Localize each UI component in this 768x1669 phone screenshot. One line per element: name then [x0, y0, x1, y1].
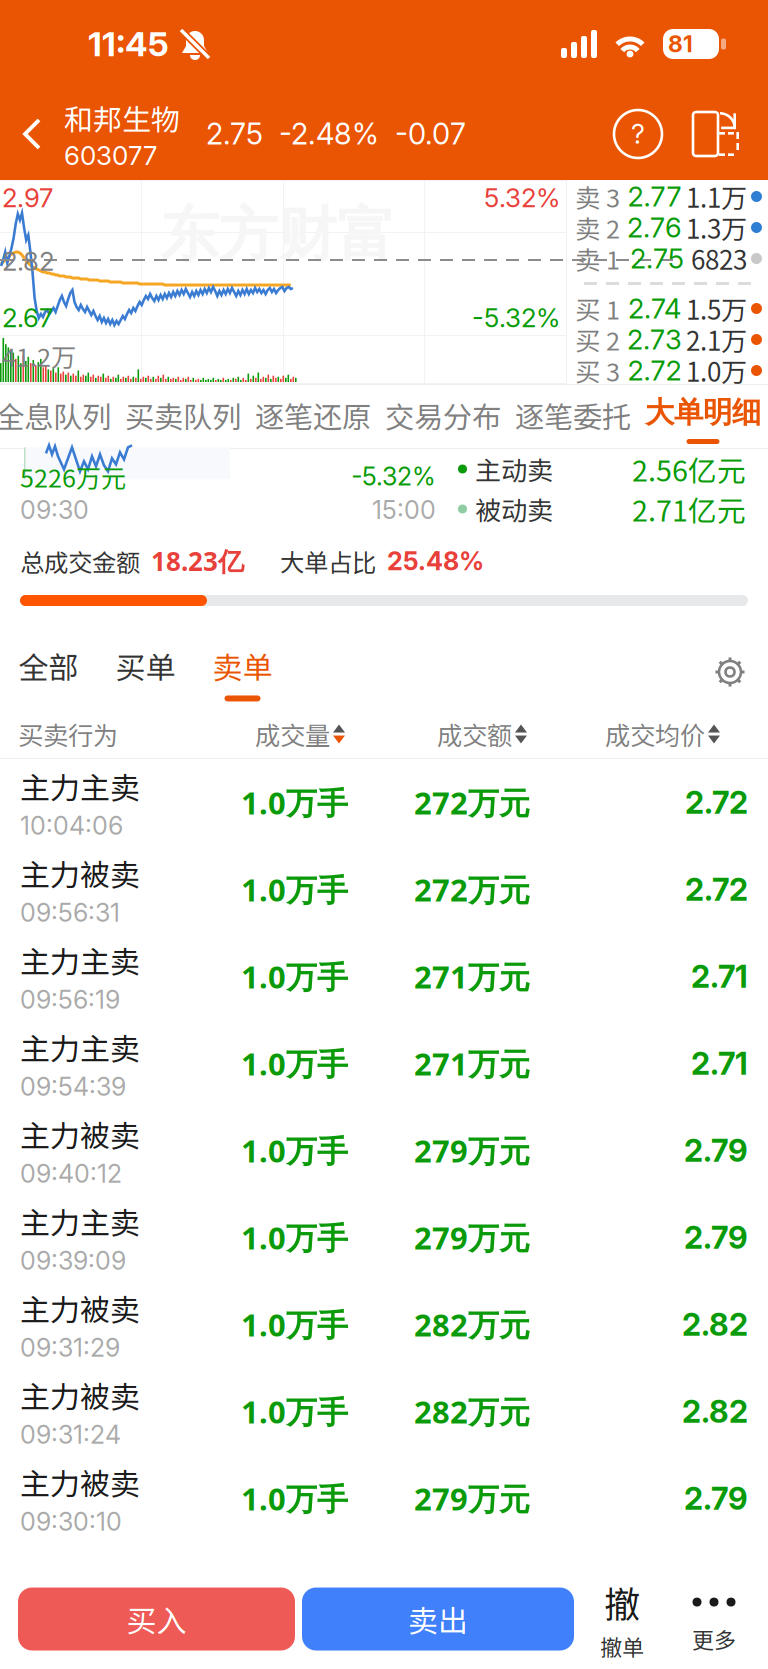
staticText: 279万元	[414, 1129, 530, 1171]
staticText: 主力被卖	[20, 1112, 140, 1155]
staticText: 2.75	[630, 242, 684, 275]
staticText: 买入	[126, 1597, 186, 1641]
staticText: 1.0万手	[241, 868, 348, 910]
staticText: 1.0万手	[241, 955, 348, 997]
staticText: 主力主卖	[20, 938, 140, 981]
staticText: 09:31:29	[20, 1333, 120, 1363]
staticText: 主力被卖	[20, 1373, 140, 1416]
staticText: 主力被卖	[20, 851, 140, 894]
staticText: 2.75 -2.48% -0.07	[206, 116, 466, 152]
staticText: 逐笔委托	[515, 394, 631, 436]
staticText: 6823	[691, 240, 747, 277]
button[interactable]: 全息队列	[0, 385, 118, 448]
staticText: 2.97	[2, 182, 53, 213]
staticText: 主力主卖	[20, 1025, 140, 1068]
button[interactable]: 买卖队列	[118, 385, 248, 448]
staticText: 2.76	[627, 211, 682, 244]
staticText: 272万元	[414, 868, 530, 910]
button[interactable]: 撤	[586, 1583, 658, 1655]
button[interactable]: 主力主卖	[0, 933, 768, 1020]
staticText: 2.72	[685, 871, 748, 908]
staticText: ?	[631, 118, 645, 150]
button[interactable]: 主力被卖	[0, 1107, 768, 1194]
staticText: 买卖行为	[18, 716, 118, 752]
staticText: 2.73	[627, 323, 682, 356]
button[interactable]: 主力被卖	[0, 1368, 768, 1455]
staticText: 买 3	[575, 352, 620, 389]
staticText: 271万元	[414, 1042, 530, 1084]
staticText: 2.79	[684, 1219, 748, 1256]
staticText: 15:00	[372, 495, 436, 525]
staticText: 1.1万	[686, 178, 747, 215]
staticText: 2.82	[682, 1393, 748, 1430]
staticText: 5.32%	[484, 182, 560, 213]
staticText: 1.5万	[686, 290, 747, 327]
staticText: 09:31:24	[20, 1420, 121, 1450]
staticText: 2.82	[682, 1306, 748, 1343]
staticText: 2.82	[2, 245, 54, 277]
button[interactable]: 卖出	[302, 1587, 574, 1650]
button[interactable]: Help	[602, 88, 674, 180]
staticText: 1.0万手	[241, 1216, 348, 1258]
staticText: 11:45	[88, 23, 169, 64]
button[interactable]: 交易分布	[378, 385, 508, 448]
staticText: 成交均价	[605, 716, 705, 752]
button[interactable]: 主力主卖	[0, 759, 768, 846]
button[interactable]: 买入	[18, 1587, 295, 1650]
button[interactable]: 主力主卖	[0, 1020, 768, 1107]
button[interactable]: 主力被卖	[0, 846, 768, 933]
staticText: 5226万元	[20, 458, 126, 495]
button[interactable]: 主力被卖	[0, 1281, 768, 1368]
staticText: 2.71	[691, 958, 748, 995]
staticText: 东方财富	[160, 198, 396, 272]
staticText: 卖 1	[575, 240, 620, 277]
button[interactable]: Back	[0, 88, 64, 180]
button[interactable]: 逐笔还原	[248, 385, 378, 448]
staticText: 主力被卖	[20, 1460, 140, 1503]
staticText: 买 1	[575, 290, 620, 327]
staticText: 603077	[64, 140, 157, 171]
staticText: 18.23亿	[151, 543, 244, 579]
staticText: 成交额	[437, 716, 512, 752]
button[interactable]: 买单	[97, 634, 194, 710]
staticText: 1.0万手	[241, 1477, 348, 1519]
staticText: 25.48%	[387, 546, 484, 576]
staticText: 买单	[115, 644, 175, 687]
staticText: 更多	[692, 1623, 736, 1655]
staticText: 1.0万手	[241, 1129, 348, 1171]
staticText: 买卖队列	[125, 394, 241, 436]
button[interactable]: 主力被卖	[0, 1455, 768, 1542]
staticText: 2.71	[691, 1045, 748, 1082]
button[interactable]: 卖单	[194, 634, 291, 710]
staticText: 09:30	[20, 495, 89, 525]
staticText: 卖出	[408, 1597, 468, 1641]
button[interactable]: Picture in picture	[682, 88, 752, 180]
button[interactable]: 更多	[678, 1583, 750, 1655]
staticText: 撤单	[600, 1630, 644, 1662]
staticText: 全部	[18, 644, 78, 687]
staticText: 282万元	[414, 1390, 530, 1432]
staticText: 279万元	[414, 1216, 530, 1258]
staticText: 2.72	[685, 784, 748, 821]
staticText: 09:56:19	[20, 985, 120, 1015]
staticText: 被动卖	[475, 490, 553, 528]
staticText: 1.0万手	[241, 1042, 348, 1084]
staticText: 279万元	[414, 1477, 530, 1519]
button[interactable]: Settings	[706, 639, 754, 705]
staticText: 主力主卖	[20, 764, 140, 807]
staticText: 2.1万	[686, 321, 747, 358]
staticText: 09:56:31	[20, 898, 120, 928]
staticText: 09:39:09	[20, 1246, 126, 1276]
button[interactable]: 全部	[0, 634, 97, 710]
staticText: 2.74	[628, 292, 681, 325]
staticText: 成交量	[255, 716, 330, 752]
staticText: 282万元	[414, 1303, 530, 1345]
staticText: 总成交金额	[20, 543, 140, 579]
button[interactable]: 主力主卖	[0, 1194, 768, 1281]
staticText: 1.0万	[686, 352, 747, 389]
button[interactable]: 逐笔委托	[508, 385, 638, 448]
button[interactable]: 大单明细	[638, 385, 768, 448]
staticText: 09:30:10	[20, 1507, 122, 1537]
staticText: 1.0万手	[241, 1390, 348, 1432]
staticText: -5.32%	[472, 302, 560, 333]
